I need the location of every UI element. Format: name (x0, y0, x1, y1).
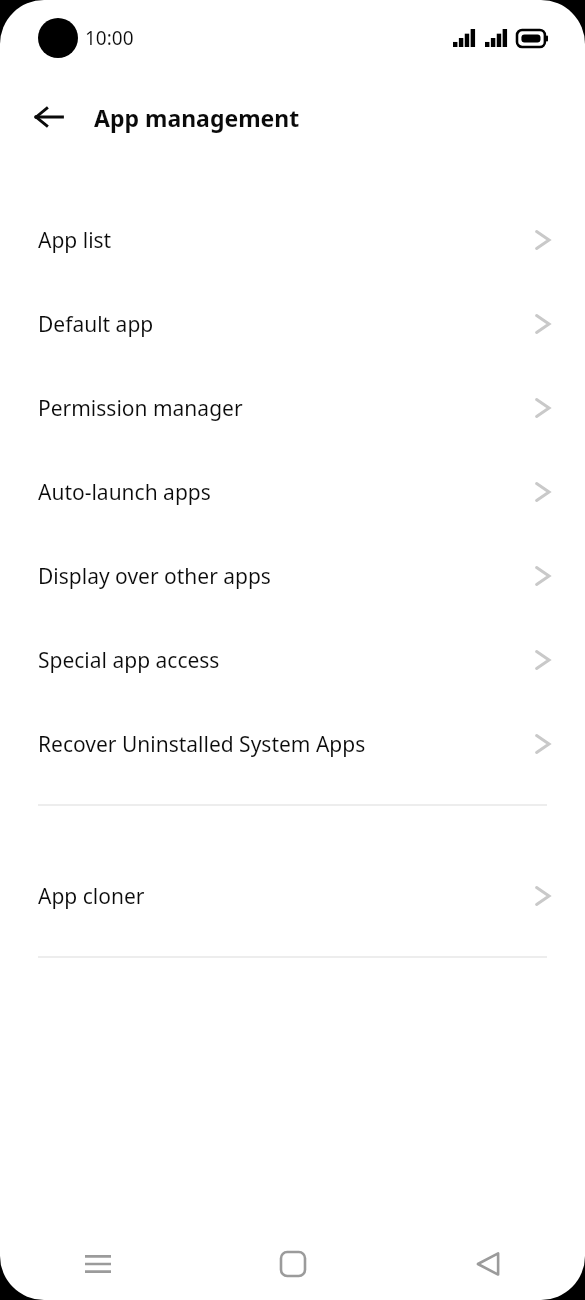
button[interactable]: Back (390, 1228, 585, 1300)
button[interactable]: Recent apps (0, 1228, 195, 1300)
staticText: Auto-launch apps (38, 478, 533, 507)
button[interactable]: Display over other apps (0, 534, 585, 618)
staticText: Default app (38, 310, 533, 339)
staticText: 10:00 (85, 25, 134, 51)
button[interactable]: Home (195, 1228, 390, 1300)
button[interactable]: App cloner (0, 854, 585, 938)
staticText: Special app access (38, 646, 533, 675)
staticText: App management (94, 102, 300, 133)
button[interactable]: App list (0, 198, 585, 282)
button[interactable]: Permission manager (0, 366, 585, 450)
button[interactable]: Default app (0, 282, 585, 366)
staticText: App list (38, 226, 533, 255)
button[interactable]: Recover Uninstalled System Apps (0, 702, 585, 786)
button[interactable]: Back (22, 90, 76, 144)
staticText: Display over other apps (38, 562, 533, 591)
button[interactable]: Special app access (0, 618, 585, 702)
staticText: App cloner (38, 882, 533, 911)
staticText: Recover Uninstalled System Apps (38, 730, 533, 759)
staticText: Permission manager (38, 394, 533, 423)
button[interactable]: Auto-launch apps (0, 450, 585, 534)
